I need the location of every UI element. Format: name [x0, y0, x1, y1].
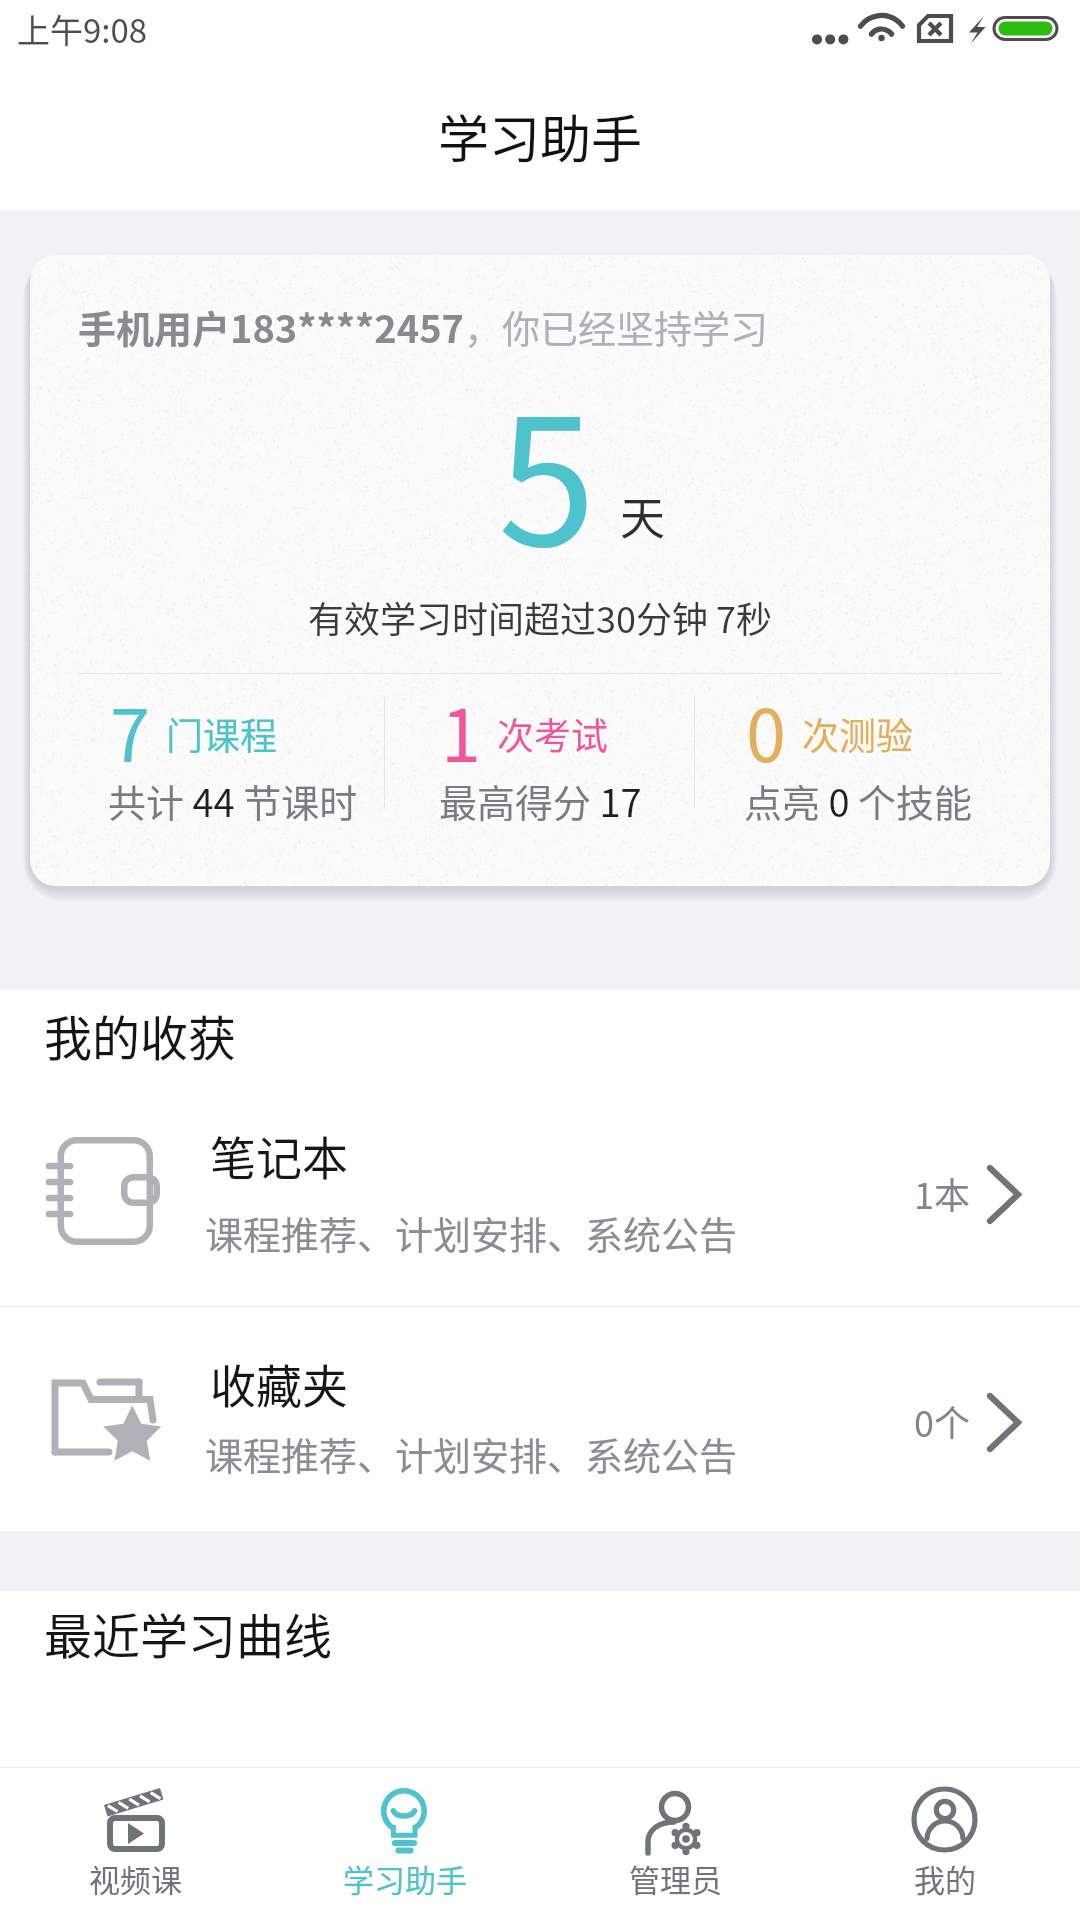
- staticText: 管理员: [629, 1856, 722, 1901]
- staticText: 手机用户183****2457，你已经坚持学习: [78, 299, 769, 354]
- staticText: 学习助手: [343, 1856, 467, 1901]
- staticText: 课程推荐、计划安排、系统公告: [205, 1205, 738, 1260]
- staticText: 0个: [914, 1395, 970, 1447]
- staticText: 7: [110, 678, 150, 782]
- button[interactable]: 管理员: [540, 1768, 810, 1920]
- staticText: 天: [620, 483, 666, 548]
- button[interactable]: 我的: [810, 1768, 1080, 1920]
- button[interactable]: 学习助手: [270, 1768, 540, 1920]
- staticText: 门课程: [166, 707, 277, 761]
- staticText: 我的收获: [44, 1000, 237, 1070]
- staticText: 次测验: [802, 707, 913, 761]
- staticText: 5: [498, 342, 596, 597]
- staticText: 共计 44 节课时: [108, 773, 358, 828]
- staticText: 我的: [914, 1856, 976, 1901]
- staticText: 收藏夹: [210, 1350, 348, 1417]
- button[interactable]: 视频课: [0, 1768, 270, 1920]
- staticText: 课程推荐、计划安排、系统公告: [205, 1426, 738, 1481]
- staticText: 次考试: [497, 707, 608, 761]
- staticText: 笔记本: [210, 1122, 348, 1189]
- staticText: 1本: [914, 1167, 970, 1219]
- staticText: 1: [441, 678, 481, 782]
- button[interactable]: 收藏夹: [0, 1307, 1080, 1531]
- staticText: 最高得分 17: [439, 773, 642, 828]
- staticText: 视频课: [89, 1856, 182, 1901]
- staticText: 点亮 0 个技能: [744, 773, 973, 828]
- staticText: 最近学习曲线: [44, 1598, 333, 1668]
- button[interactable]: 笔记本: [0, 1104, 1080, 1296]
- staticText: 学习助手: [438, 99, 643, 173]
- staticText: 上午9:08: [17, 5, 148, 53]
- staticText: 0: [746, 678, 786, 782]
- staticText: 有效学习时间超过30分钟 7秒: [308, 591, 773, 643]
